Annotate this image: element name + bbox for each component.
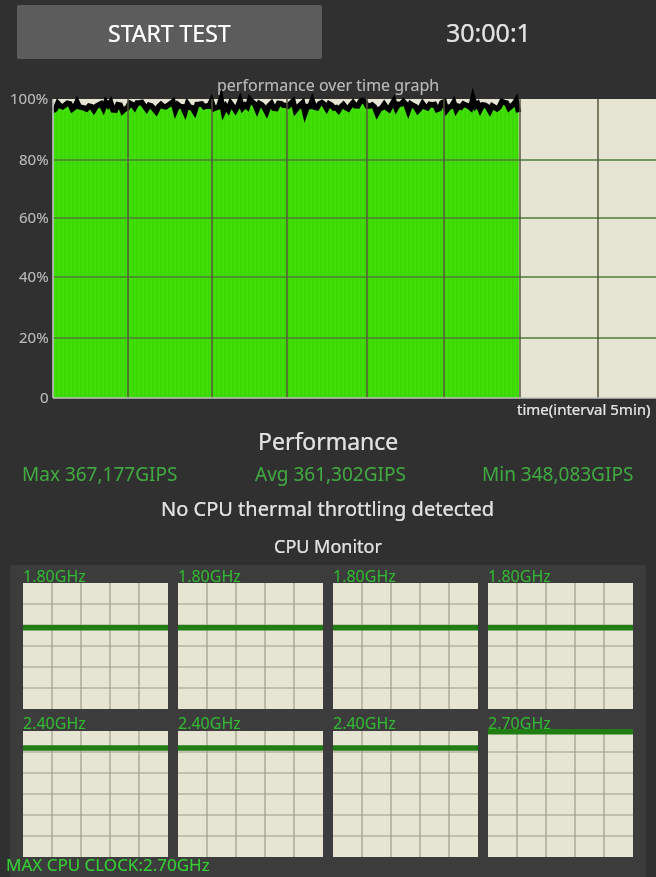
staticText: 1.80GHz [488,565,551,587]
staticText: time(interval 5min) [517,399,651,419]
staticText: 2.40GHz [23,712,86,734]
staticText: 60% [19,207,49,227]
staticText: 100% [10,88,49,108]
staticText: MAX CPU CLOCK:2.70GHz [6,853,210,876]
staticText: Min 348,083GIPS [482,461,634,487]
staticText: Avg 361,302GIPS [255,461,406,487]
staticText: 2.70GHz [488,712,551,734]
staticText: 2.40GHz [333,712,396,734]
staticText: Max 367,177GIPS [22,461,178,487]
button[interactable]: START TEST [17,5,322,59]
staticText: 0 [40,387,49,407]
staticText: No CPU thermal throttling detected [161,495,495,522]
staticText: 20% [19,327,49,347]
staticText: 1.80GHz [23,565,86,587]
staticText: 40% [19,266,49,286]
staticText: 80% [19,149,49,169]
staticText: START TEST [108,17,231,48]
staticText: 30:00:1 [446,15,531,49]
staticText: 1.80GHz [178,565,241,587]
staticText: 2.40GHz [178,712,241,734]
staticText: performance over time graph [217,74,440,96]
staticText: Performance [258,425,399,456]
staticText: CPU Monitor [274,534,382,559]
staticText: 1.80GHz [333,565,396,587]
